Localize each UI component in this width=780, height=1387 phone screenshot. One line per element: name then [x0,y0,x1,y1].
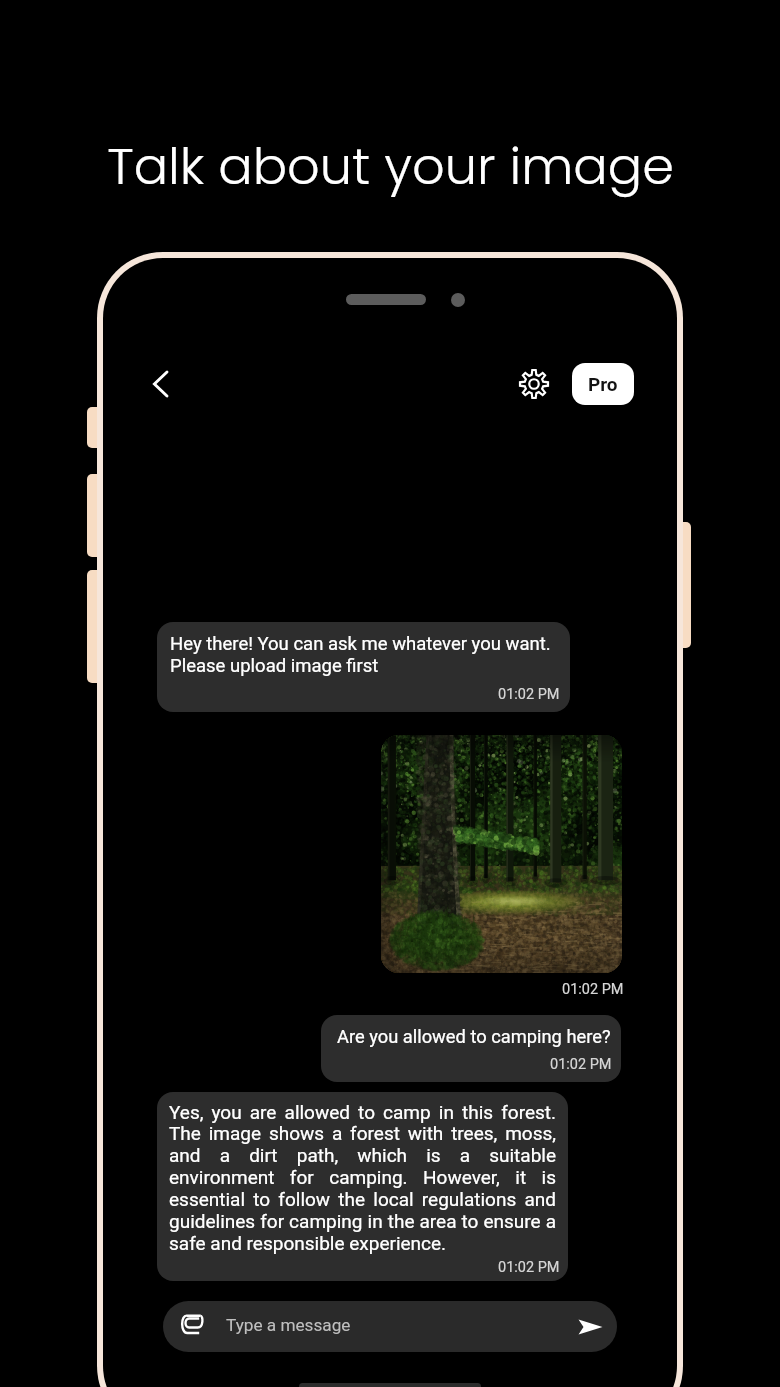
staticText: Type a message [226,1315,351,1335]
staticText: 01:02 PM [498,686,560,703]
button[interactable]: Pro [572,363,634,405]
staticText: 01:02 PM [562,981,624,998]
button[interactable]: Yes, you are allowed to camp in this for… [157,1092,568,1281]
button[interactable]: Photo of a forest [381,735,622,973]
button[interactable]: Hey there! You can ask me whatever you w… [157,622,570,712]
button[interactable]: Are you allowed to camping here? [321,1015,621,1082]
other: Attach file [180,1314,204,1339]
button[interactable]: Back [139,362,183,406]
staticText: Pro [588,373,618,395]
staticText: Talk about your image [107,130,674,201]
button[interactable]: Settings [508,358,560,410]
other: Send [578,1317,603,1337]
staticText: Hey there! You can ask me whatever you w… [170,633,551,677]
staticText: Are you allowed to camping here? [337,1026,611,1047]
button[interactable]: Attach file [163,1301,617,1352]
staticText: Yes, you are allowed to camp in this for… [169,1101,556,1255]
staticText: 01:02 PM [550,1056,612,1073]
staticText: 01:02 PM [498,1259,560,1276]
